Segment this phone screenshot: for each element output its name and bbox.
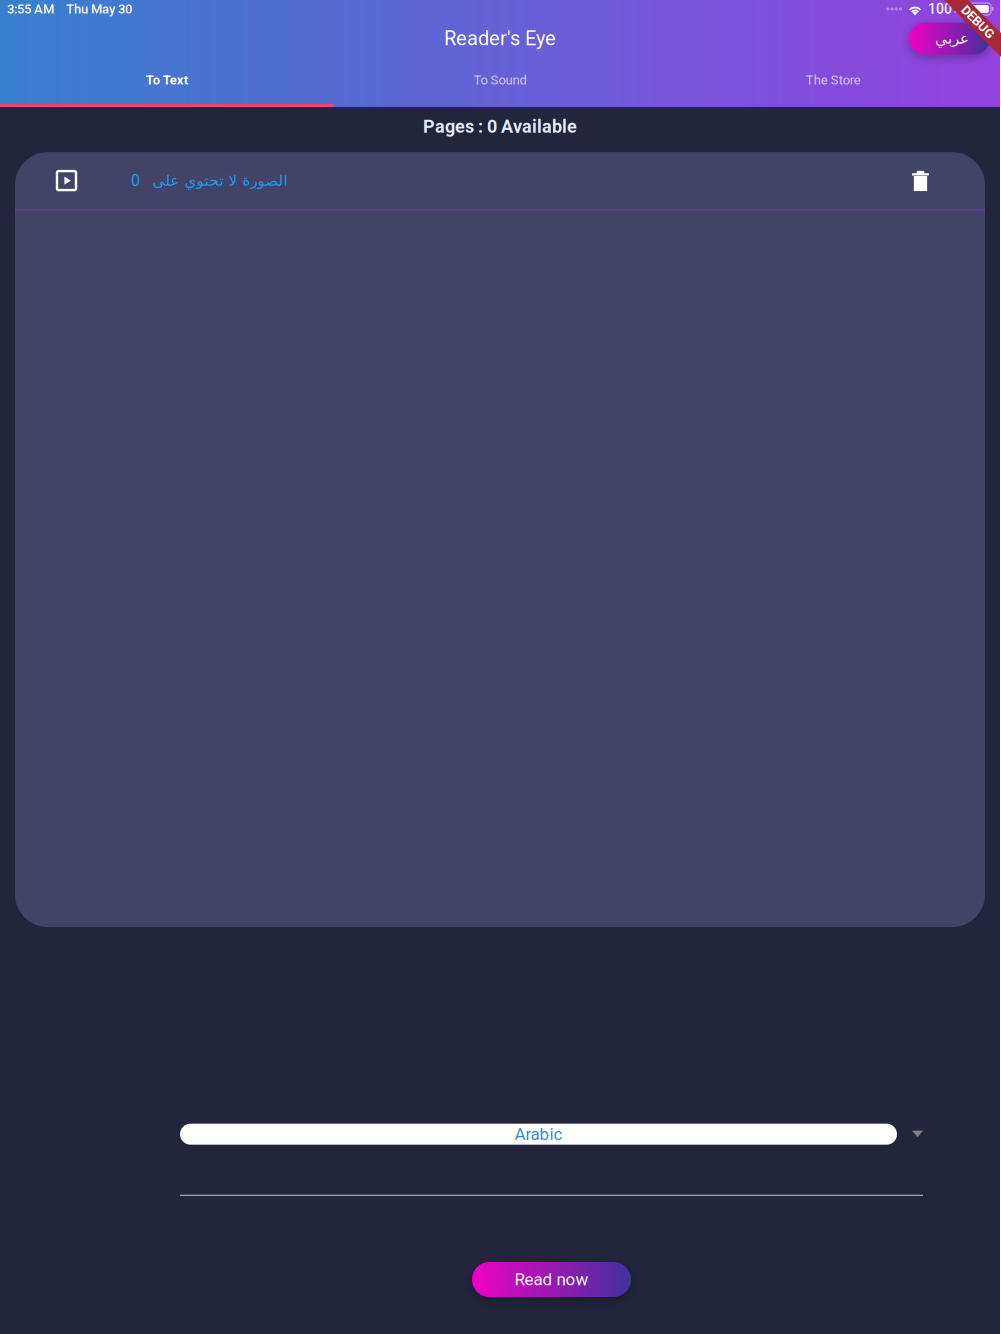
staticText: 0	[131, 171, 140, 190]
staticText: Arabic	[514, 1124, 562, 1144]
staticText: 100%	[928, 1, 962, 17]
staticText: عربي	[934, 30, 968, 47]
button[interactable]: Arabic	[180, 1124, 897, 1145]
staticText: Thu May 30	[66, 1, 132, 17]
button[interactable]: عربي	[909, 22, 990, 54]
staticText: To Text	[146, 72, 188, 88]
staticText: The Store	[806, 72, 861, 88]
staticText: Read now	[514, 1269, 588, 1289]
button[interactable]: Choose language	[912, 1131, 923, 1138]
button[interactable]: 0	[15, 152, 985, 209]
staticText: الصورة لا تحتوي على	[152, 172, 287, 189]
staticText: Pages : 0 Available	[423, 116, 577, 137]
button[interactable]: The Store	[667, 69, 1000, 91]
staticText: To Sound	[473, 72, 526, 88]
staticText: 3:55 AM	[7, 1, 54, 17]
button[interactable]: To Sound	[333, 69, 667, 91]
staticText: Reader's Eye	[444, 27, 556, 50]
staticText: DEBUG	[957, 14, 998, 30]
button[interactable]: To Text	[0, 69, 333, 91]
button[interactable]: Read now	[472, 1262, 631, 1297]
